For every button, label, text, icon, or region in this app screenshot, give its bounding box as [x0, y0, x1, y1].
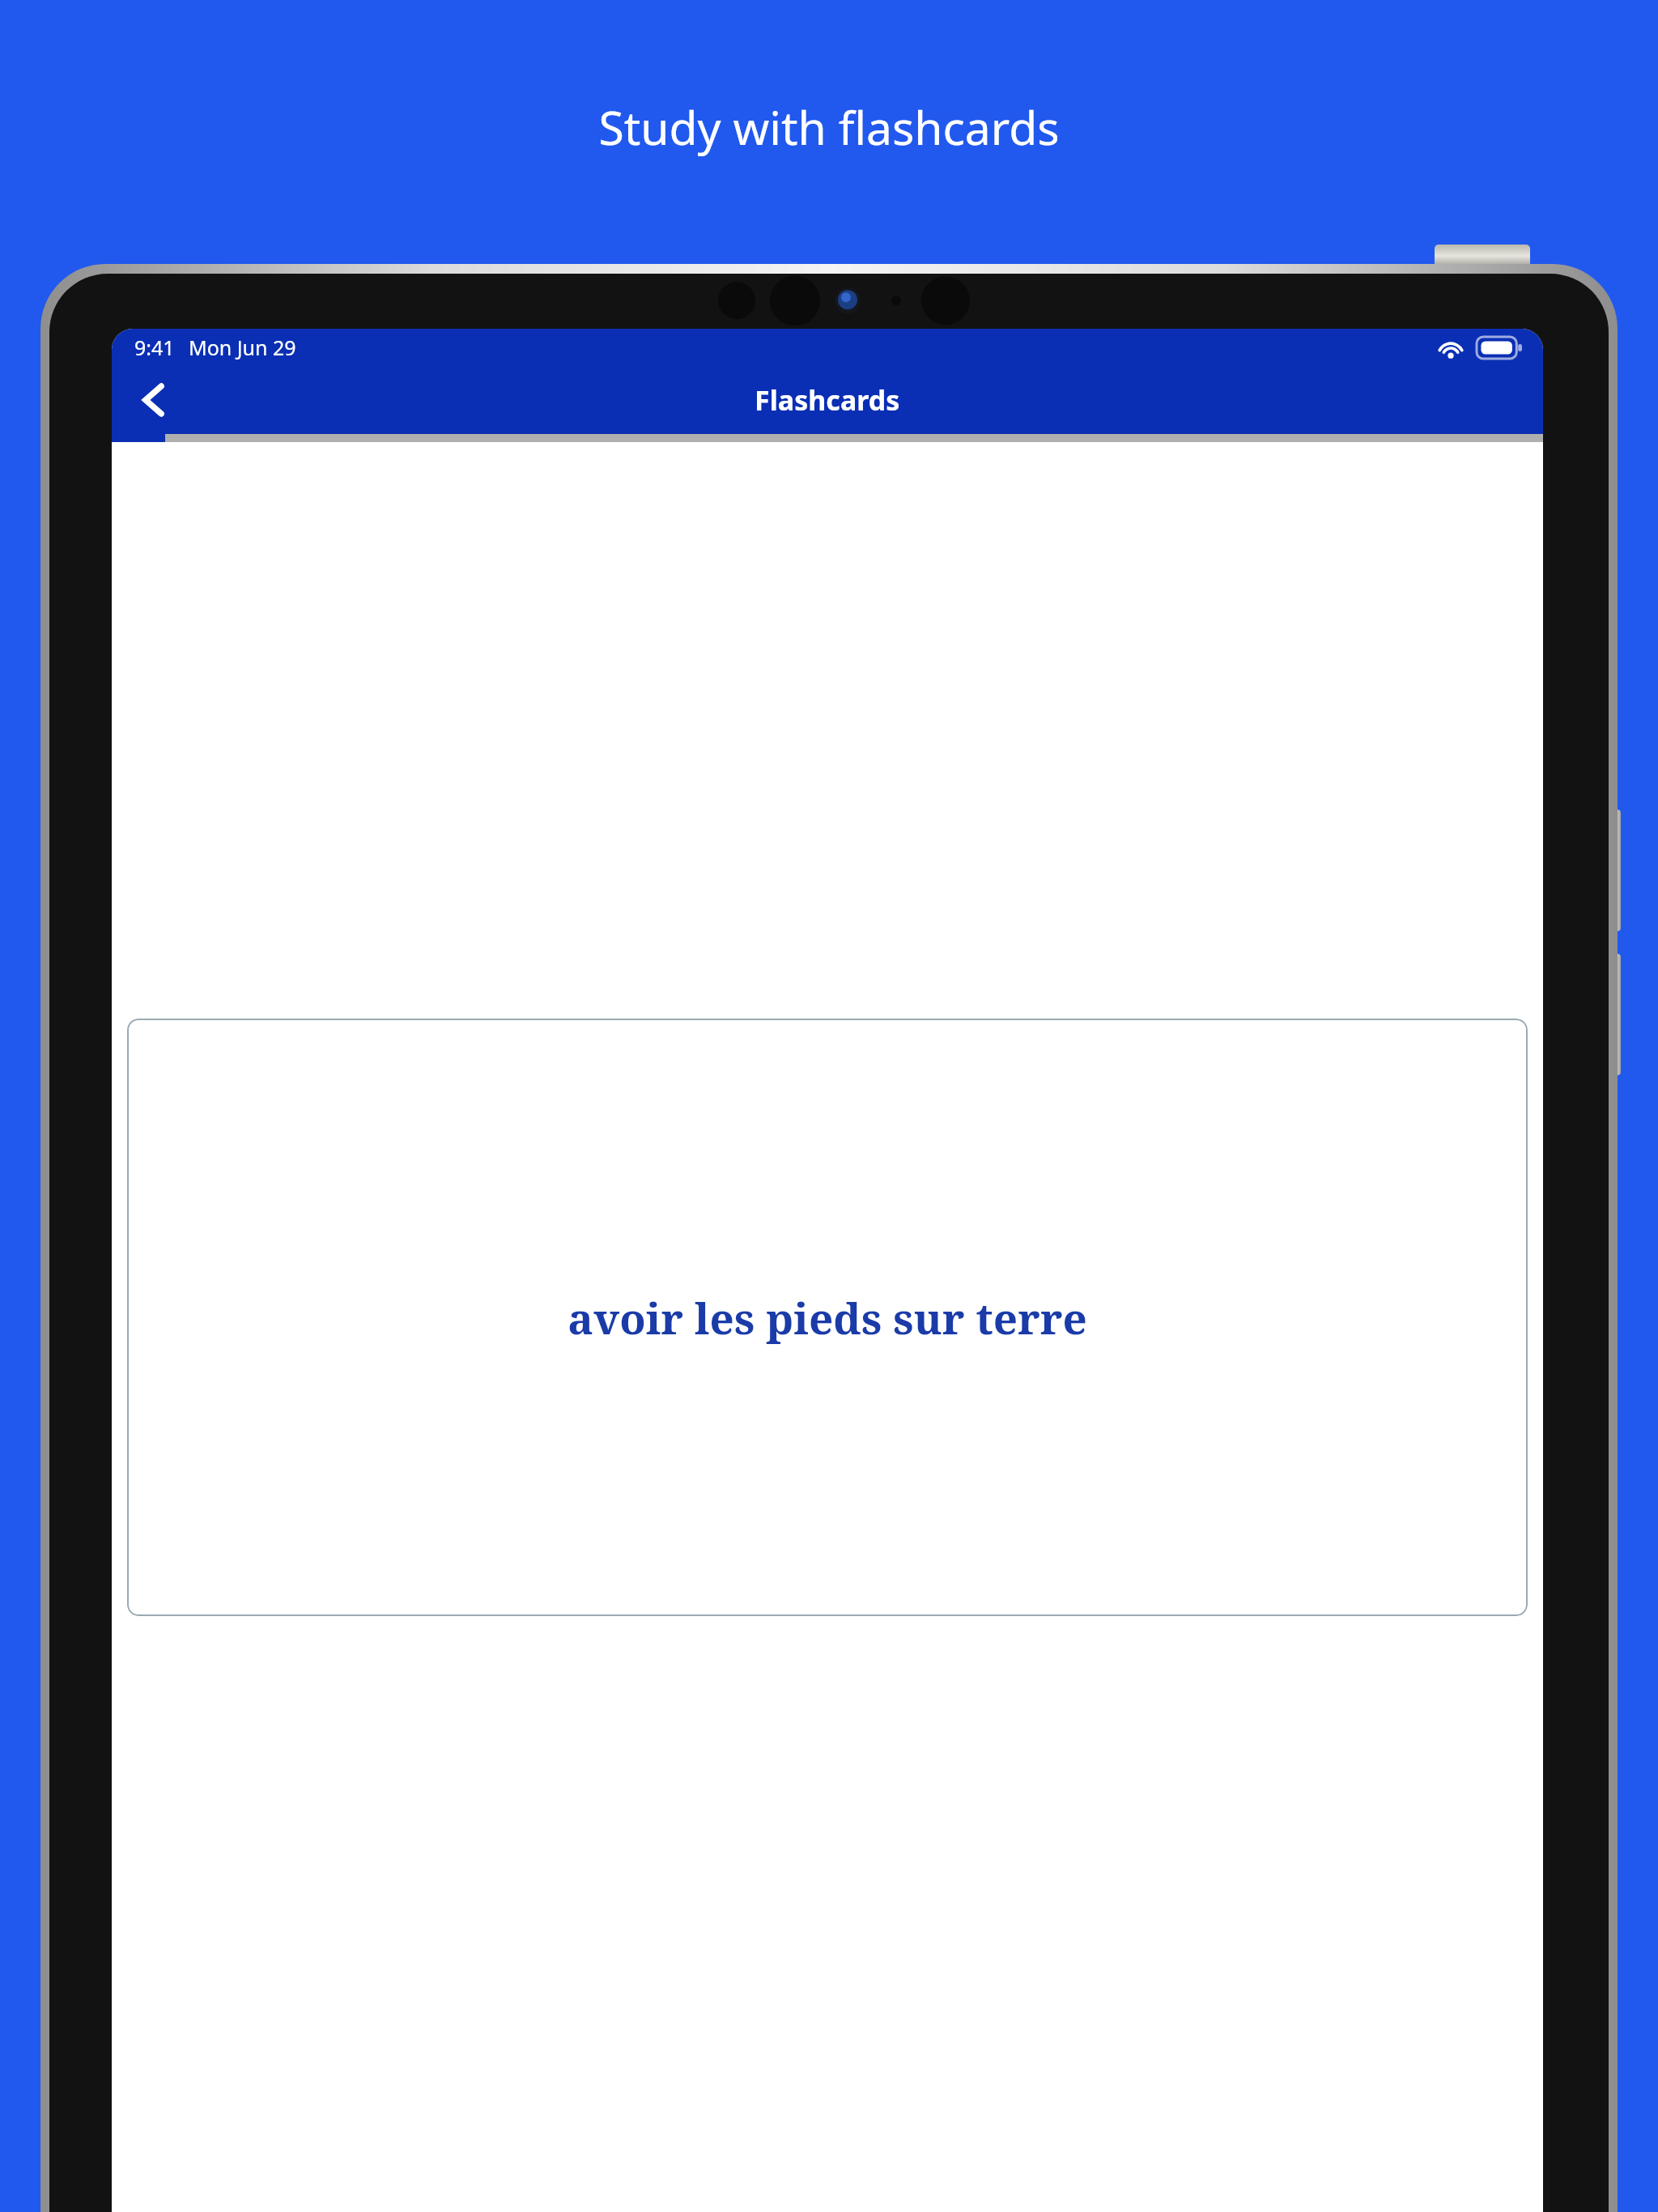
staticText: Mon Jun 29: [189, 334, 296, 361]
button[interactable]: Back: [118, 366, 189, 434]
staticText: Study with flashcards: [598, 96, 1060, 159]
button[interactable]: avoir les pieds sur terre: [127, 1019, 1528, 1616]
staticText: 9:41: [134, 334, 175, 361]
staticText: avoir les pieds sur terre: [568, 1288, 1087, 1346]
staticText: Flashcards: [755, 381, 900, 419]
